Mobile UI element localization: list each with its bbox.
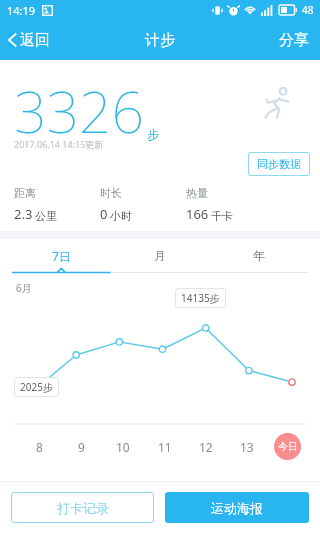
- staticText: 打卡记录: [57, 500, 109, 516]
- staticText: 返回: [20, 31, 50, 50]
- button[interactable]: 分享: [268, 20, 320, 60]
- button[interactable]: 返回: [0, 20, 60, 60]
- button[interactable]: 9: [60, 439, 102, 455]
- staticText: 14:19: [7, 3, 36, 18]
- staticText: 2025步: [20, 380, 53, 394]
- staticText: 月: [154, 248, 166, 263]
- button[interactable]: 7日: [12, 248, 110, 264]
- staticText: 时长: [100, 186, 122, 200]
- staticText: 同步数据: [257, 157, 301, 171]
- staticText: 6月: [16, 281, 32, 295]
- staticText: 千卡: [211, 209, 233, 223]
- button[interactable]: 年: [209, 248, 308, 263]
- staticText: 11: [158, 439, 172, 455]
- staticText: 12: [199, 439, 213, 455]
- button[interactable]: 运动海报: [165, 492, 309, 523]
- staticText: 9: [78, 439, 85, 455]
- staticText: 计步: [145, 31, 175, 50]
- button[interactable]: 12: [185, 439, 226, 455]
- staticText: 热量: [186, 186, 208, 200]
- staticText: 分享: [279, 31, 309, 50]
- staticText: 今日: [278, 440, 298, 453]
- staticText: 14135步: [181, 291, 220, 305]
- button[interactable]: 13: [226, 439, 267, 455]
- button[interactable]: 10: [102, 439, 144, 455]
- staticText: 年: [253, 248, 265, 263]
- button[interactable]: 8: [18, 439, 60, 455]
- staticText: 166: [186, 205, 209, 223]
- button[interactable]: 月: [110, 248, 209, 263]
- staticText: 48: [302, 3, 314, 17]
- staticText: 7日: [52, 248, 71, 264]
- button[interactable]: 11: [144, 439, 185, 455]
- staticText: 步: [147, 127, 159, 142]
- staticText: 10: [116, 439, 130, 455]
- button[interactable]: 同步数据: [248, 152, 310, 176]
- staticText: 0: [100, 205, 108, 223]
- button[interactable]: 打卡记录: [11, 492, 154, 523]
- staticText: 2017.06.14 14:15更新: [14, 138, 104, 150]
- staticText: 公里: [35, 209, 57, 223]
- staticText: 2.3: [14, 205, 33, 223]
- staticText: 8: [36, 439, 43, 455]
- staticText: 运动海报: [211, 500, 263, 516]
- staticText: 小时: [110, 209, 132, 223]
- button[interactable]: 今日: [274, 433, 301, 460]
- staticText: 3326: [14, 72, 144, 150]
- staticText: 距离: [14, 186, 36, 200]
- staticText: 13: [240, 439, 254, 455]
